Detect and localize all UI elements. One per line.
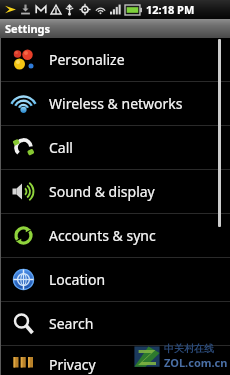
staticText: Privacy <box>49 355 96 374</box>
button[interactable]: Call <box>0 126 230 169</box>
staticText: Settings <box>5 21 51 36</box>
staticText: Search <box>49 314 94 333</box>
staticText: Personalize <box>49 50 125 69</box>
button[interactable]: Privacy <box>0 346 230 375</box>
staticText: Call <box>49 138 73 157</box>
staticText: Location <box>49 270 106 289</box>
button[interactable]: Personalize <box>0 38 230 81</box>
staticText: Accounts & sync <box>49 226 156 245</box>
staticText: Wireless & networks <box>49 94 183 113</box>
button[interactable]: Search <box>0 302 230 345</box>
staticText: Sound & display <box>49 182 155 201</box>
button[interactable]: Wireless & networks <box>0 82 230 125</box>
button[interactable]: Location <box>0 258 230 301</box>
button[interactable]: Accounts & sync <box>0 214 230 257</box>
staticText: ZOL.com.cn <box>164 355 228 370</box>
staticText: 中关村在线 <box>164 342 214 355</box>
button[interactable]: Sound & display <box>0 170 230 213</box>
staticText: 12:18 PM <box>146 2 195 17</box>
